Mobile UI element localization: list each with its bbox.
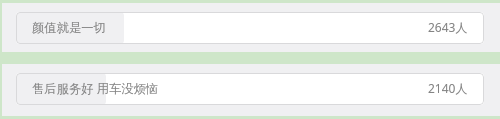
staticText: 2140人: [428, 80, 468, 96]
button[interactable]: 颜值就是一切: [16, 12, 484, 44]
button[interactable]: 售后服务好 用车没烦恼: [16, 73, 484, 105]
button[interactable]: [2, 3, 500, 52]
staticText: 2643人: [428, 19, 468, 35]
button[interactable]: [2, 64, 500, 116]
staticText: 售后服务好 用车没烦恼: [32, 80, 159, 97]
staticText: 颜值就是一切: [32, 20, 106, 35]
